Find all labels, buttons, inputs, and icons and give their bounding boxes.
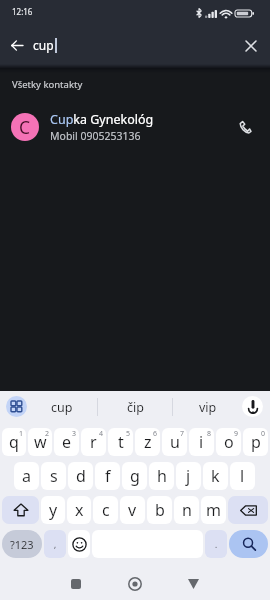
staticText: k bbox=[211, 465, 220, 487]
button[interactable]: , bbox=[44, 530, 66, 558]
staticText: c bbox=[102, 499, 110, 521]
button[interactable]: m bbox=[201, 496, 226, 524]
staticText: i bbox=[199, 431, 204, 453]
staticText: C bbox=[19, 115, 31, 139]
staticText: v bbox=[128, 499, 137, 521]
staticText: 7 bbox=[180, 429, 185, 439]
button[interactable]: w bbox=[28, 428, 52, 456]
button[interactable]: Back bbox=[7, 35, 27, 55]
button[interactable]: o bbox=[216, 428, 241, 456]
button[interactable]: Keyboard settings bbox=[6, 396, 27, 417]
staticText: Mobil 0905253136 bbox=[50, 129, 141, 143]
button[interactable]: z bbox=[135, 428, 160, 456]
button[interactable]: t bbox=[108, 428, 133, 456]
staticText: 6 bbox=[153, 429, 158, 439]
button[interactable]: Recents bbox=[62, 570, 90, 598]
staticText: Všetky kontakty bbox=[12, 78, 83, 91]
staticText: a bbox=[22, 465, 31, 487]
button[interactable]: c bbox=[93, 496, 118, 524]
button[interactable]: Call bbox=[232, 114, 258, 140]
staticText: w bbox=[34, 431, 47, 453]
button[interactable]: q bbox=[2, 428, 26, 456]
staticText: cup bbox=[51, 399, 73, 416]
button[interactable]: i bbox=[189, 428, 214, 456]
staticText: q bbox=[9, 431, 19, 453]
staticText: vip bbox=[199, 399, 217, 416]
button[interactable]: n bbox=[174, 496, 199, 524]
button[interactable]: x bbox=[67, 496, 91, 524]
button[interactable]: čip bbox=[98, 396, 172, 418]
button[interactable]: Back bbox=[179, 570, 207, 598]
staticText: j bbox=[186, 465, 191, 487]
staticText: 8 bbox=[207, 429, 212, 439]
staticText: r bbox=[90, 431, 97, 453]
staticText: 1 bbox=[19, 429, 24, 439]
staticText: 2 bbox=[45, 429, 50, 439]
staticText: . bbox=[215, 539, 218, 550]
button[interactable]: Home bbox=[121, 570, 149, 598]
staticText: 3 bbox=[72, 429, 77, 439]
staticText: 12:16 bbox=[12, 6, 33, 17]
staticText: d bbox=[76, 465, 86, 487]
button[interactable]: k bbox=[203, 462, 228, 490]
button[interactable]: s bbox=[41, 462, 66, 490]
button[interactable]: Backspace bbox=[228, 496, 268, 524]
staticText: g bbox=[130, 465, 140, 487]
button[interactable]: Emoji bbox=[68, 530, 90, 558]
button[interactable]: g bbox=[122, 462, 147, 490]
button[interactable]: cup bbox=[27, 396, 97, 418]
staticText: e bbox=[62, 431, 72, 453]
button[interactable]: y bbox=[41, 496, 65, 524]
staticText: , bbox=[54, 539, 57, 550]
button[interactable]: Shift bbox=[2, 496, 39, 524]
staticText: h bbox=[157, 465, 167, 487]
button[interactable]: u bbox=[162, 428, 187, 456]
staticText: 0 bbox=[261, 429, 266, 439]
staticText: n bbox=[182, 499, 192, 521]
staticText: čip bbox=[127, 399, 144, 416]
staticText: Cupka Gynekológ bbox=[50, 111, 154, 128]
button[interactable]: a bbox=[14, 462, 39, 490]
button[interactable]: r bbox=[81, 428, 106, 456]
button[interactable]: Clear search bbox=[240, 35, 262, 57]
staticText: y bbox=[49, 499, 58, 521]
staticText: o bbox=[224, 431, 234, 453]
button[interactable]: h bbox=[149, 462, 174, 490]
staticText: b bbox=[155, 499, 165, 521]
staticText: s bbox=[50, 465, 58, 487]
staticText: x bbox=[75, 499, 84, 521]
button[interactable]: p bbox=[243, 428, 268, 456]
staticText: t bbox=[118, 431, 124, 453]
button[interactable]: vip bbox=[173, 396, 243, 418]
staticText: ?123 bbox=[10, 537, 34, 552]
button[interactable]: j bbox=[176, 462, 201, 490]
staticText: z bbox=[144, 431, 152, 453]
button[interactable]: l bbox=[230, 462, 255, 490]
staticText: l bbox=[240, 465, 245, 487]
staticText: f bbox=[105, 465, 111, 487]
staticText: u bbox=[170, 431, 180, 453]
button[interactable]: f bbox=[95, 462, 120, 490]
staticText: 5 bbox=[126, 429, 131, 439]
button[interactable]: ?123 bbox=[2, 530, 42, 558]
button[interactable]: d bbox=[68, 462, 93, 490]
button[interactable]: b bbox=[147, 496, 172, 524]
button[interactable]: Voice input bbox=[242, 396, 263, 417]
staticText: 4 bbox=[99, 429, 104, 439]
button[interactable]: C bbox=[0, 102, 270, 152]
button[interactable]: . bbox=[205, 530, 227, 558]
button[interactable]: Search bbox=[229, 530, 268, 558]
staticText: 9 bbox=[234, 429, 239, 439]
staticText: p bbox=[251, 431, 261, 453]
staticText: m bbox=[206, 499, 221, 521]
staticText: cup bbox=[33, 37, 54, 53]
button[interactable]: e bbox=[54, 428, 79, 456]
button[interactable]: v bbox=[120, 496, 145, 524]
